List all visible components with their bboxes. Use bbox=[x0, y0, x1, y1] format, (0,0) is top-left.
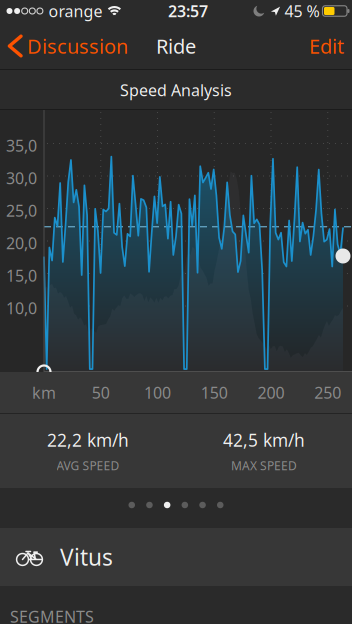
staticText: km bbox=[32, 382, 56, 403]
staticText: Speed Analysis bbox=[120, 79, 232, 101]
staticText: 10,0 bbox=[6, 297, 37, 319]
staticText: 20,0 bbox=[6, 232, 37, 254]
staticText: 250 bbox=[314, 382, 341, 403]
staticText: 100 bbox=[144, 382, 171, 403]
staticText: 45 % bbox=[284, 0, 319, 22]
staticText: 42,5 km/h bbox=[223, 428, 305, 451]
staticText: Ride bbox=[156, 33, 196, 59]
staticText: MAX SPEED bbox=[231, 457, 297, 473]
staticText: Edit bbox=[309, 33, 344, 59]
staticText: 35,0 bbox=[6, 135, 37, 156]
staticText: 150 bbox=[201, 382, 228, 403]
staticText: 15,0 bbox=[6, 265, 37, 286]
staticText: 30,0 bbox=[6, 167, 37, 189]
staticText: AVG SPEED bbox=[56, 457, 119, 473]
button[interactable]: Vitus bbox=[0, 528, 352, 586]
button[interactable]: Edit bbox=[295, 26, 352, 66]
staticText: Vitus bbox=[60, 542, 113, 572]
staticText: orange bbox=[48, 0, 102, 22]
staticText: SEGMENTS bbox=[10, 606, 94, 624]
staticText: 25,0 bbox=[6, 200, 37, 221]
button[interactable]: Discussion bbox=[0, 27, 128, 65]
staticText: 23:57 bbox=[168, 0, 208, 22]
staticText: 22,2 km/h bbox=[47, 428, 129, 451]
staticText: Discussion bbox=[27, 33, 128, 59]
staticText: 50 bbox=[92, 382, 110, 403]
staticText: 200 bbox=[257, 382, 284, 403]
